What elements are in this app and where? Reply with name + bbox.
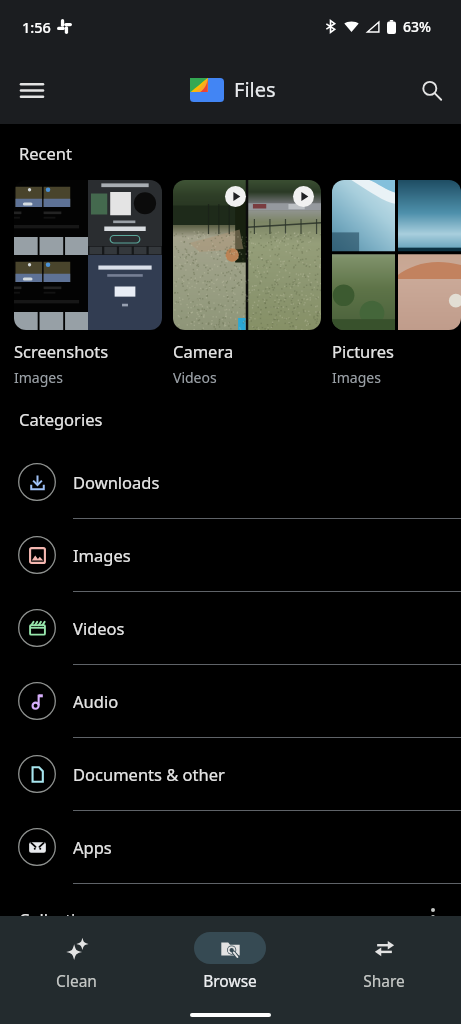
staticText: Pictures	[332, 340, 395, 362]
button[interactable]: Images	[0, 518, 461, 591]
button[interactable]: Screenshots	[14, 180, 162, 387]
staticText: Videos	[73, 617, 125, 639]
staticText: Files	[234, 76, 276, 103]
staticText: Collections	[19, 908, 104, 930]
staticText: Images	[332, 368, 381, 387]
button[interactable]: Apps	[0, 810, 461, 883]
staticText: Images	[73, 544, 131, 566]
staticText: Camera	[173, 340, 234, 362]
staticText: 1:56	[22, 17, 51, 37]
staticText: Images	[14, 368, 63, 387]
staticText: Categories	[19, 408, 103, 430]
staticText: Downloads	[73, 471, 160, 493]
button[interactable]: Open navigation menu	[9, 67, 55, 113]
staticText: Screenshots	[14, 340, 109, 362]
button[interactable]: Browse	[153, 932, 307, 991]
button[interactable]: Search	[408, 67, 454, 113]
staticText: Clean	[56, 970, 97, 991]
button[interactable]: Share	[307, 932, 461, 991]
staticText: Apps	[73, 836, 112, 858]
button[interactable]: Downloads	[0, 445, 461, 518]
staticText: 63%	[403, 17, 431, 36]
staticText: Videos	[173, 368, 217, 387]
button[interactable]: Documents & other	[0, 737, 461, 810]
staticText: Share	[363, 970, 405, 991]
button[interactable]: Clean	[0, 932, 153, 991]
button[interactable]: Videos	[0, 591, 461, 664]
staticText: Documents & other	[73, 763, 225, 785]
button[interactable]: More options	[413, 897, 453, 937]
staticText: Recent	[19, 142, 72, 164]
staticText: Browse	[203, 970, 257, 991]
button[interactable]: Camera	[173, 180, 321, 387]
staticText: Audio	[73, 690, 119, 712]
button[interactable]: Audio	[0, 664, 461, 737]
button[interactable]: Pictures	[332, 180, 461, 387]
